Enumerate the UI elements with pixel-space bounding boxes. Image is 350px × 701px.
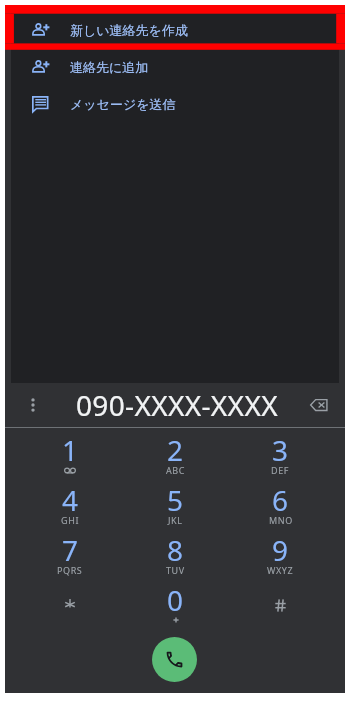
staticText: 3: [272, 431, 289, 469]
button[interactable]: Backspace: [293, 383, 345, 427]
button[interactable]: 連絡先に追加: [11, 48, 339, 85]
staticText: 4: [62, 481, 79, 519]
button[interactable]: 0: [123, 581, 228, 631]
staticText: DEF: [271, 464, 290, 476]
staticText: PQRS: [57, 564, 83, 576]
staticText: 5: [167, 481, 184, 519]
staticText: JKL: [168, 514, 183, 526]
button[interactable]: 8: [123, 531, 228, 581]
staticText: WXYZ: [267, 564, 294, 576]
button[interactable]: 4: [17, 481, 123, 531]
staticText: 0: [167, 581, 184, 619]
button[interactable]: [17, 581, 123, 631]
button[interactable]: More options: [5, 383, 61, 427]
button[interactable]: 新しい連絡先を作成: [11, 11, 339, 48]
staticText: 連絡先に追加: [70, 59, 149, 75]
staticText: GHI: [61, 514, 80, 526]
staticText: TUV: [166, 564, 185, 576]
staticText: 8: [167, 531, 184, 569]
staticText: 6: [272, 481, 289, 519]
button[interactable]: 1: [17, 431, 123, 481]
button[interactable]: [228, 581, 333, 631]
staticText: 新しい連絡先を作成: [70, 22, 188, 38]
staticText: 7: [62, 531, 79, 569]
button[interactable]: 6: [228, 481, 333, 531]
staticText: ABC: [166, 464, 186, 476]
staticText: 2: [167, 431, 184, 469]
staticText: MNO: [269, 514, 293, 526]
button[interactable]: 7: [17, 531, 123, 581]
button[interactable]: メッセージを送信: [11, 85, 339, 122]
staticText: 090-XXXX-XXXX: [76, 386, 278, 424]
button[interactable]: 3: [228, 431, 333, 481]
button[interactable]: Call: [152, 637, 197, 682]
button[interactable]: 5: [123, 481, 228, 531]
staticText: 9: [272, 531, 289, 569]
staticText: 1: [62, 431, 79, 469]
button[interactable]: 9: [228, 531, 333, 581]
staticText: メッセージを送信: [70, 96, 176, 112]
button[interactable]: 2: [123, 431, 228, 481]
